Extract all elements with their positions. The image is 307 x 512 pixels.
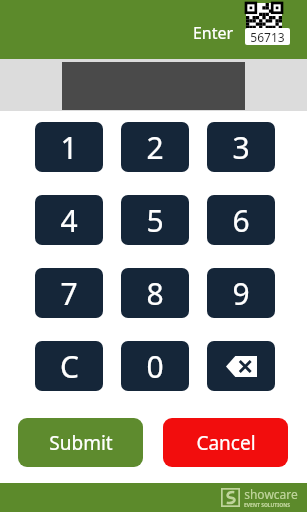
button[interactable]: Scan QR code 56713 xyxy=(243,1,289,47)
button[interactable]: 2 xyxy=(121,122,189,172)
button[interactable]: Submit xyxy=(18,418,143,467)
staticText: C xyxy=(60,346,79,387)
button[interactable]: Cancel xyxy=(163,418,288,467)
staticText: 9 xyxy=(232,273,250,314)
button[interactable]: 3 xyxy=(207,122,275,172)
button[interactable]: 7 xyxy=(35,268,103,318)
staticText: EVENT SOLUTIONS xyxy=(244,502,290,509)
staticText: Submit xyxy=(49,430,113,456)
staticText: 7 xyxy=(60,273,78,314)
staticText: 3 xyxy=(232,127,250,168)
button[interactable]: C xyxy=(35,341,103,391)
button[interactable]: Backspace xyxy=(207,341,275,391)
staticText: 1 xyxy=(60,127,78,168)
button[interactable]: 6 xyxy=(207,195,275,245)
button[interactable]: 1 xyxy=(35,122,103,172)
staticText: 4 xyxy=(60,200,78,241)
staticText: 0 xyxy=(146,346,164,387)
staticText: Enter xyxy=(190,22,236,44)
staticText: 56713 xyxy=(250,29,285,45)
button[interactable]: 5 xyxy=(121,195,189,245)
button[interactable]: Showcare Event Solutions xyxy=(221,486,298,509)
staticText: showcare xyxy=(244,486,298,502)
staticText: 2 xyxy=(146,127,164,168)
button[interactable]: 8 xyxy=(121,268,189,318)
staticText: 8 xyxy=(146,273,164,314)
staticText: 6 xyxy=(232,200,250,241)
staticText: Cancel xyxy=(196,430,256,456)
button[interactable]: 4 xyxy=(35,195,103,245)
button[interactable]: 9 xyxy=(207,268,275,318)
button[interactable]: 0 xyxy=(121,341,189,391)
staticText: 5 xyxy=(146,200,164,241)
